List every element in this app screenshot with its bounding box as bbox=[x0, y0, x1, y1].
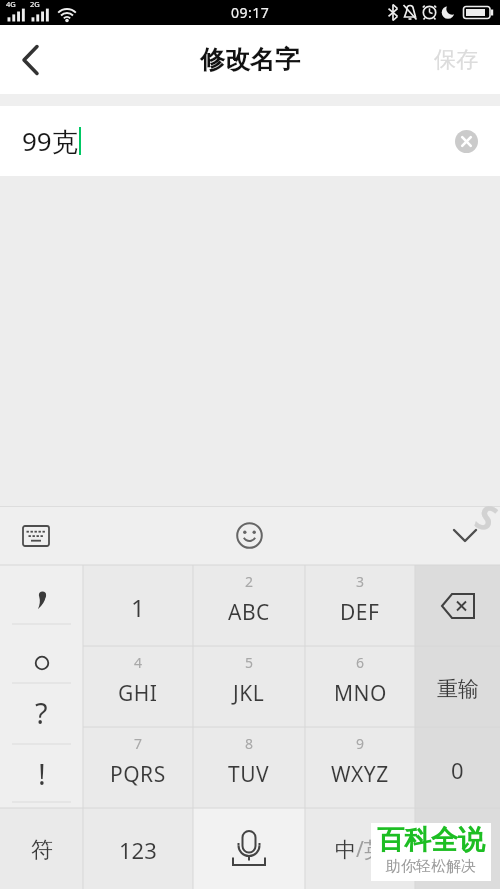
button[interactable]: 123 bbox=[83, 808, 193, 889]
staticText: 2 bbox=[245, 572, 254, 591]
button[interactable]: 符 bbox=[0, 808, 83, 889]
staticText: 百科全说 bbox=[377, 823, 485, 857]
staticText: 4 bbox=[134, 653, 143, 672]
button[interactable] bbox=[0, 565, 83, 624]
button[interactable] bbox=[0, 25, 62, 94]
button[interactable]: 1 bbox=[83, 565, 193, 646]
staticText: 符 bbox=[31, 836, 53, 864]
staticText: 7 bbox=[134, 734, 143, 753]
button[interactable]: 5 bbox=[193, 646, 305, 727]
button[interactable]: 重输 bbox=[415, 646, 500, 727]
button[interactable]: 中/英 bbox=[305, 808, 415, 889]
button[interactable]: 9 bbox=[305, 727, 415, 808]
staticText: 2G bbox=[30, 0, 40, 9]
staticText: 重输 bbox=[437, 676, 479, 702]
button[interactable] bbox=[415, 808, 500, 889]
button[interactable]: 0 bbox=[415, 727, 500, 808]
button[interactable]: ? bbox=[0, 683, 83, 742]
staticText: JKL bbox=[233, 679, 265, 708]
button[interactable] bbox=[0, 624, 83, 683]
staticText: 保存 bbox=[434, 46, 478, 74]
button[interactable]: 6 bbox=[305, 646, 415, 727]
button[interactable]: 3 bbox=[305, 565, 415, 646]
button[interactable]: 7 bbox=[83, 727, 193, 808]
staticText: 09:17 bbox=[231, 3, 270, 22]
staticText: TUV bbox=[228, 760, 270, 789]
staticText: 8 bbox=[245, 734, 254, 753]
staticText: WXYZ bbox=[331, 760, 389, 789]
staticText: 4G bbox=[6, 0, 16, 9]
staticText: 6 bbox=[356, 653, 365, 672]
staticText: 123 bbox=[119, 835, 157, 865]
staticText: 中/英 bbox=[335, 835, 385, 864]
staticText: 5 bbox=[245, 653, 254, 672]
staticText: GHI bbox=[118, 679, 158, 708]
button[interactable] bbox=[193, 808, 305, 889]
staticText: 修改名字 bbox=[200, 44, 300, 75]
staticText: ABC bbox=[228, 598, 270, 627]
button[interactable]: 保存 bbox=[434, 46, 478, 74]
staticText: 99克 bbox=[22, 123, 78, 159]
staticText: 3 bbox=[356, 572, 365, 591]
staticText: 0 bbox=[451, 755, 464, 785]
staticText: ! bbox=[38, 754, 46, 793]
button[interactable] bbox=[415, 565, 500, 646]
staticText: ? bbox=[35, 693, 48, 732]
button[interactable] bbox=[224, 515, 274, 555]
staticText: PQRS bbox=[110, 760, 166, 789]
button[interactable]: 4 bbox=[83, 646, 193, 727]
button[interactable] bbox=[455, 130, 478, 153]
button[interactable] bbox=[443, 517, 487, 553]
button[interactable]: ! bbox=[0, 744, 83, 803]
staticText: MNO bbox=[334, 679, 387, 708]
staticText: 1 bbox=[131, 591, 145, 624]
staticText: 助你轻松解决 bbox=[386, 857, 476, 876]
staticText: S bbox=[470, 492, 500, 542]
staticText: 9 bbox=[356, 734, 365, 753]
staticText: DEF bbox=[340, 598, 380, 627]
button[interactable]: 8 bbox=[193, 727, 305, 808]
button[interactable]: 2 bbox=[193, 565, 305, 646]
button[interactable] bbox=[10, 512, 62, 559]
